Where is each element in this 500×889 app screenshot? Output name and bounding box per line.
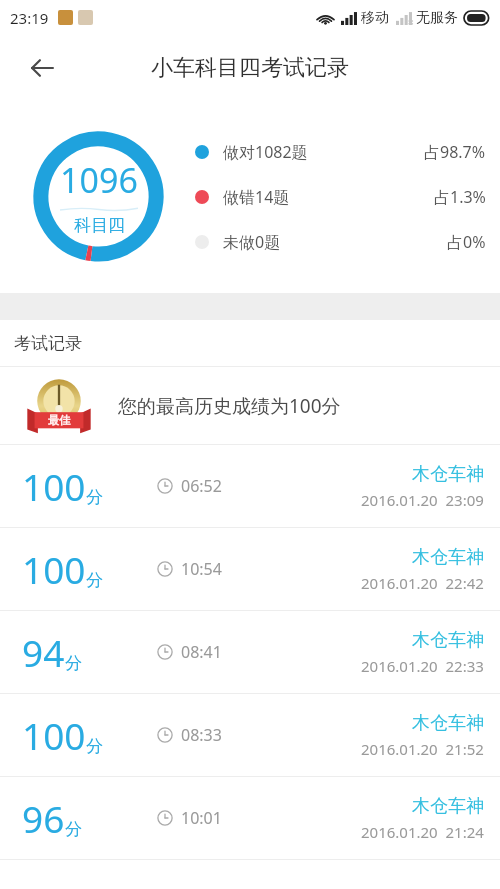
staticText: 小车科目四考试记录 <box>151 54 349 82</box>
staticText: 分 <box>86 570 103 591</box>
staticText: 08:33 <box>181 724 222 746</box>
staticText: 分 <box>65 819 82 840</box>
staticText: 木仓车神 <box>412 795 484 818</box>
button[interactable]: 94 <box>0 611 500 693</box>
button[interactable]: 最佳 <box>0 367 500 444</box>
staticText: 木仓车神 <box>412 712 484 735</box>
staticText: 08:41 <box>181 641 222 663</box>
staticText: 做错14题 <box>223 186 290 208</box>
staticText: 木仓车神 <box>412 546 484 569</box>
staticText: 06:52 <box>181 475 222 497</box>
button[interactable]: 100 <box>0 694 500 776</box>
staticText: 木仓车神 <box>412 629 484 652</box>
button[interactable]: 100 <box>0 445 500 527</box>
staticText: 100 <box>22 461 86 511</box>
staticText: 分 <box>65 653 82 674</box>
staticText: 1096 <box>60 157 138 203</box>
staticText: 100 <box>22 544 86 594</box>
staticText: 未做0题 <box>223 231 281 253</box>
staticText: 无服务 <box>416 9 458 27</box>
button[interactable]: Back <box>18 44 66 92</box>
staticText: 占1.3% <box>434 186 486 208</box>
staticText: 2016.01.20 21:52 <box>361 739 484 759</box>
staticText: 100 <box>22 710 86 760</box>
staticText: 96 <box>22 793 65 843</box>
staticText: 最佳 <box>48 413 70 427</box>
button[interactable]: 100 <box>0 528 500 610</box>
staticText: 2016.01.20 23:09 <box>361 490 484 510</box>
staticText: 2016.01.20 21:24 <box>361 822 484 842</box>
staticText: 考试记录 <box>14 333 82 354</box>
staticText: 科目四 <box>74 215 125 236</box>
staticText: 木仓车神 <box>412 463 484 486</box>
staticText: 2016.01.20 22:42 <box>361 573 484 593</box>
staticText: 23:19 <box>10 8 49 28</box>
staticText: 94 <box>22 627 65 677</box>
staticText: 占98.7% <box>424 141 486 163</box>
staticText: 10:01 <box>181 807 222 829</box>
staticText: 您的最高历史成绩为100分 <box>118 393 341 419</box>
staticText: 占0% <box>447 231 486 253</box>
staticText: 分 <box>86 487 103 508</box>
button[interactable]: 96 <box>0 777 500 859</box>
staticText: 移动 <box>361 9 389 27</box>
staticText: 10:54 <box>181 558 222 580</box>
staticText: 做对1082题 <box>223 141 308 163</box>
staticText: 2016.01.20 22:33 <box>361 656 484 676</box>
staticText: 分 <box>86 736 103 757</box>
